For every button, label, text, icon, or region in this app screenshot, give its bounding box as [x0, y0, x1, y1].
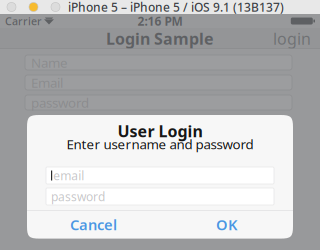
- staticText: login: [273, 28, 311, 49]
- staticText: Carrier: [5, 14, 42, 28]
- button[interactable]: OK: [160, 211, 293, 239]
- staticText: Login Sample: [106, 28, 214, 49]
- staticText: 2:16 PM: [137, 13, 182, 29]
- staticText: password: [31, 94, 89, 111]
- button[interactable]: login: [269, 24, 315, 53]
- staticText: password: [51, 188, 105, 204]
- staticText: Email: [31, 74, 63, 91]
- staticText: email: [53, 167, 84, 183]
- staticText: Name: [31, 54, 68, 71]
- button[interactable]: Cancel: [27, 211, 160, 239]
- staticText: iPhone 5 – iPhone 5 / iOS 9.1 (13B137): [68, 0, 284, 15]
- staticText: Enter username and password: [66, 135, 253, 153]
- staticText: OK: [216, 215, 237, 234]
- staticText: Cancel: [70, 215, 117, 234]
- staticText: User Login: [117, 120, 202, 142]
